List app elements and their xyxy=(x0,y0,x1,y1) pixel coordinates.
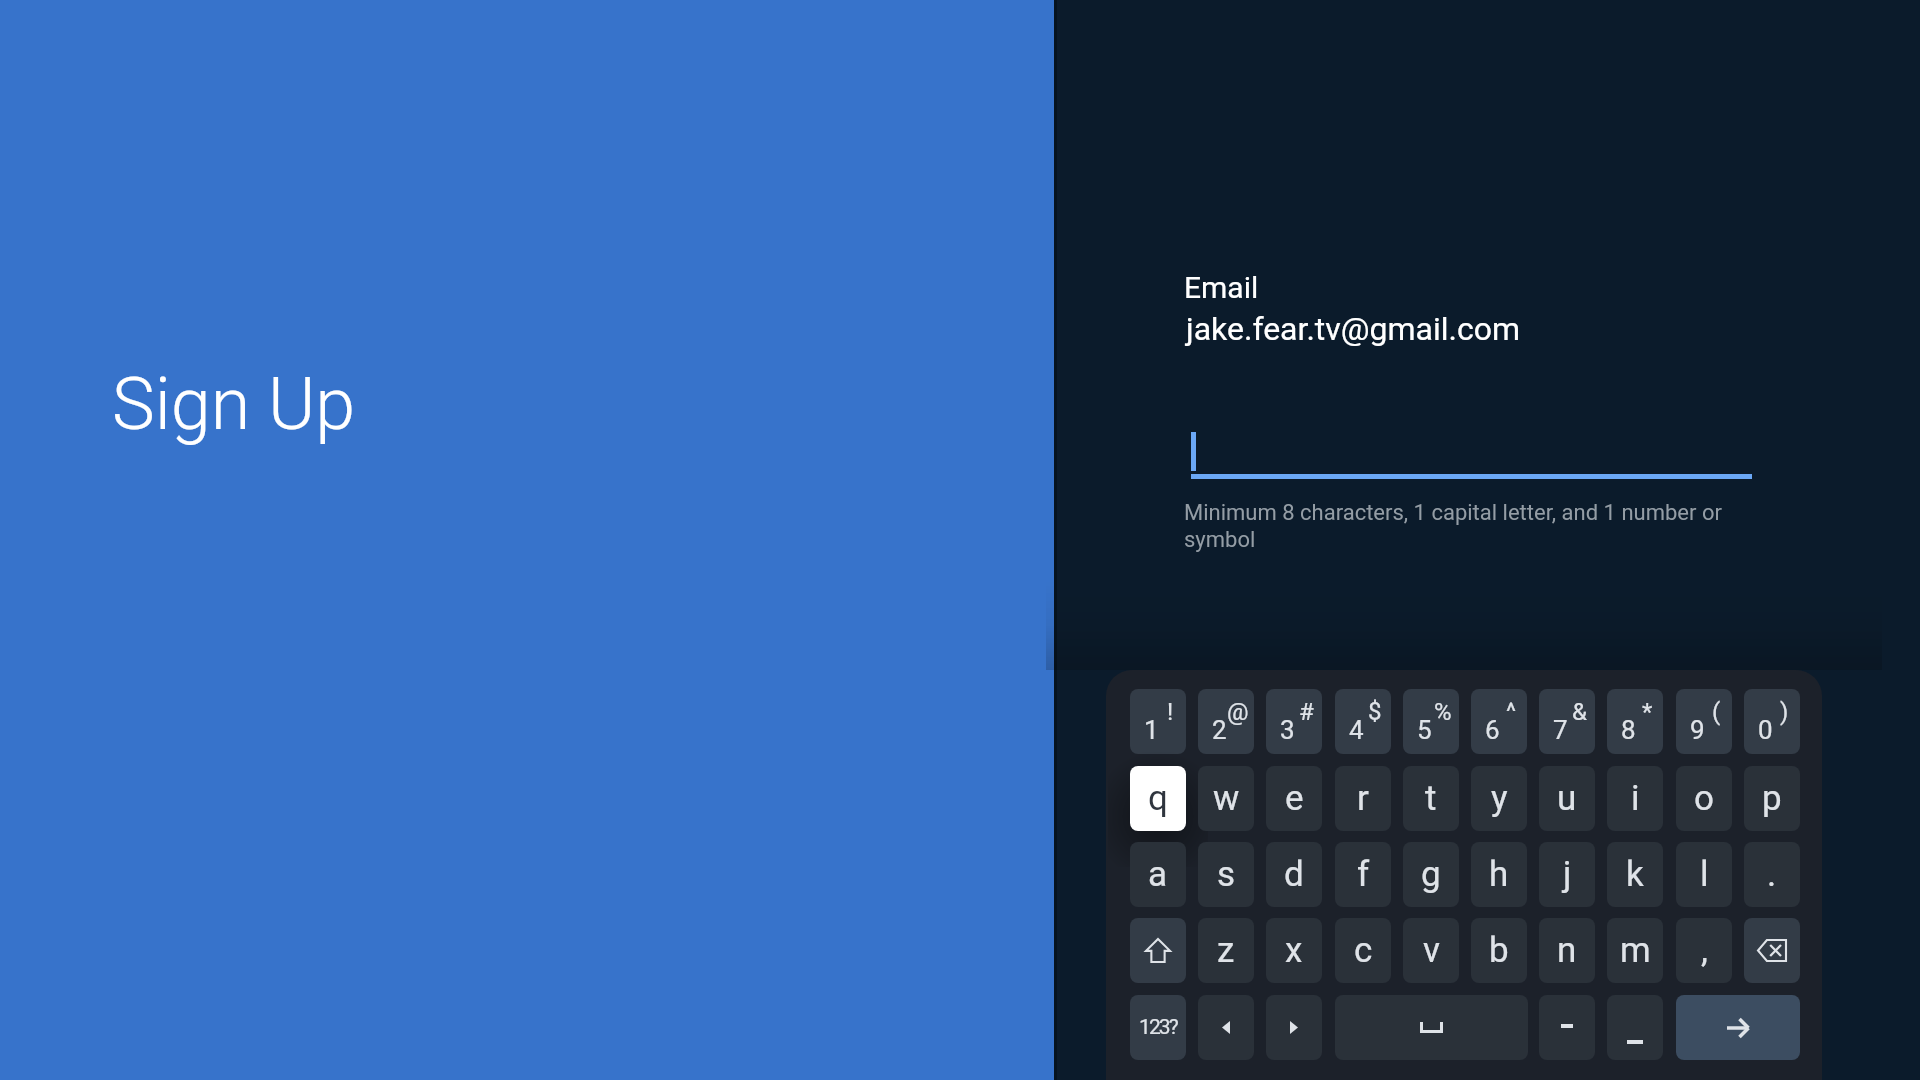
button[interactable]: y xyxy=(1471,766,1527,831)
staticText: p xyxy=(1762,778,1782,819)
button[interactable]: l xyxy=(1676,842,1732,907)
button[interactable]: Space xyxy=(1335,995,1528,1060)
staticText: ( xyxy=(1712,698,1721,726)
staticText: x xyxy=(1285,930,1303,971)
staticText: jake.fear.tv@gmail.com xyxy=(1186,310,1521,348)
staticText: w xyxy=(1213,778,1240,819)
staticText: k xyxy=(1626,854,1644,895)
staticText: t xyxy=(1425,778,1437,819)
button[interactable]: 8 xyxy=(1607,689,1663,754)
staticText: b xyxy=(1489,930,1509,971)
button[interactable]: h xyxy=(1471,842,1527,907)
staticText: d xyxy=(1284,854,1304,895)
staticText: z xyxy=(1217,930,1235,971)
button[interactable]: . xyxy=(1744,842,1800,907)
staticText: Minimum 8 characters, 1 capital letter, … xyxy=(1184,500,1722,552)
button[interactable]: 4 xyxy=(1335,689,1391,754)
button[interactable]: x xyxy=(1266,918,1322,983)
staticText: c xyxy=(1354,930,1373,971)
button[interactable]: z xyxy=(1198,918,1254,983)
button[interactable]: 123? xyxy=(1130,995,1186,1060)
button[interactable]: a xyxy=(1130,842,1186,907)
staticText: o xyxy=(1694,778,1714,819)
button[interactable]: e xyxy=(1266,766,1322,831)
button[interactable]: 3 xyxy=(1266,689,1322,754)
staticText: v xyxy=(1423,930,1440,971)
staticText: 5 xyxy=(1417,715,1432,745)
button[interactable]: j xyxy=(1539,842,1595,907)
staticText: s xyxy=(1217,854,1236,895)
staticText: i xyxy=(1631,778,1640,819)
staticText: $ xyxy=(1368,698,1382,726)
button[interactable]: Enter xyxy=(1676,995,1800,1060)
button[interactable]: v xyxy=(1403,918,1459,983)
button[interactable]: 0 xyxy=(1744,689,1800,754)
staticText: 1 xyxy=(1144,715,1159,745)
button[interactable]: 2 xyxy=(1198,689,1254,754)
staticText: l xyxy=(1700,854,1709,895)
staticText: 6 xyxy=(1485,715,1500,745)
button[interactable]: k xyxy=(1607,842,1663,907)
staticText: u xyxy=(1557,778,1577,819)
button[interactable]: 6 xyxy=(1471,689,1527,754)
button[interactable]: Minus xyxy=(1539,995,1595,1060)
button[interactable]: m xyxy=(1607,918,1663,983)
staticText: 3 xyxy=(1280,715,1295,745)
button[interactable]: b xyxy=(1471,918,1527,983)
button[interactable]: Underscore xyxy=(1607,995,1663,1060)
staticText: h xyxy=(1489,854,1509,895)
button[interactable]: , xyxy=(1676,918,1732,983)
button[interactable]: Move left xyxy=(1198,995,1254,1060)
staticText: y xyxy=(1491,778,1508,819)
button[interactable]: f xyxy=(1335,842,1391,907)
staticText: , xyxy=(1701,930,1708,971)
button[interactable]: 5 xyxy=(1403,689,1459,754)
button[interactable]: r xyxy=(1335,766,1391,831)
button[interactable]: Shift xyxy=(1130,918,1186,983)
staticText: ^ xyxy=(1506,698,1517,726)
staticText: g xyxy=(1421,854,1441,895)
staticText: m xyxy=(1620,930,1651,971)
staticText: 9 xyxy=(1690,715,1705,745)
staticText: # xyxy=(1299,698,1314,726)
staticText: % xyxy=(1434,698,1452,726)
staticText: ! xyxy=(1167,698,1174,726)
button[interactable]: t xyxy=(1403,766,1459,831)
staticText: j xyxy=(1563,854,1572,895)
button[interactable]: 9 xyxy=(1676,689,1732,754)
staticText: f xyxy=(1357,854,1370,895)
staticText: 7 xyxy=(1553,715,1568,745)
staticText: 2 xyxy=(1212,715,1227,745)
staticText: . xyxy=(1767,854,1777,895)
staticText: * xyxy=(1642,698,1653,726)
button[interactable]: 7 xyxy=(1539,689,1595,754)
button[interactable]: g xyxy=(1403,842,1459,907)
staticText: & xyxy=(1572,698,1587,726)
button[interactable]: n xyxy=(1539,918,1595,983)
staticText: 123? xyxy=(1139,1015,1177,1040)
staticText: 8 xyxy=(1621,715,1636,745)
staticText: r xyxy=(1357,778,1369,819)
button[interactable]: u xyxy=(1539,766,1595,831)
button[interactable]: Backspace xyxy=(1744,918,1800,983)
button[interactable]: i xyxy=(1607,766,1663,831)
button[interactable]: 1 xyxy=(1130,689,1186,754)
button[interactable]: c xyxy=(1335,918,1391,983)
button[interactable]: d xyxy=(1266,842,1322,907)
button[interactable]: q xyxy=(1130,766,1186,831)
button[interactable]: o xyxy=(1676,766,1732,831)
staticText: q xyxy=(1148,778,1168,819)
staticText: 0 xyxy=(1758,715,1773,745)
staticText: Sign Up xyxy=(112,362,356,446)
button[interactable]: Move right xyxy=(1266,995,1322,1060)
staticText: n xyxy=(1557,930,1577,971)
staticText: @ xyxy=(1227,698,1249,726)
button[interactable]: w xyxy=(1198,766,1254,831)
staticText: a xyxy=(1148,854,1168,895)
staticText: 4 xyxy=(1349,715,1364,745)
staticText: e xyxy=(1285,778,1304,819)
staticText: ) xyxy=(1780,698,1789,726)
button[interactable]: p xyxy=(1744,766,1800,831)
staticText: Email xyxy=(1184,270,1259,305)
button[interactable]: s xyxy=(1198,842,1254,907)
